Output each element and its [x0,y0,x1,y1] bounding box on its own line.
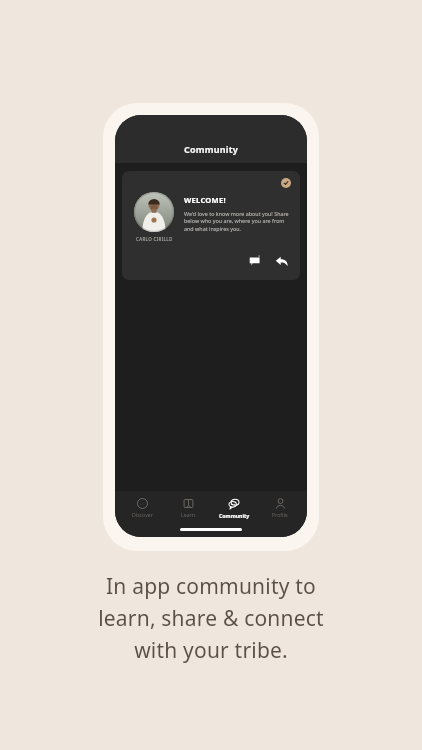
button[interactable]: Learn [165,491,211,525]
button[interactable]: Verified [122,171,300,280]
staticText: with your tribe. [30,636,392,665]
staticText: learn, share & connect [30,604,392,633]
button[interactable]: Community [211,491,257,525]
button[interactable]: Profile [257,491,303,525]
staticText: Community [219,512,250,519]
button[interactable]: Discover [119,491,165,525]
staticText: CARLO CIRILLO [136,236,173,242]
button[interactable]: Comment [245,251,265,271]
button[interactable]: Reply [271,251,291,271]
staticText: In app community to [30,572,392,601]
staticText: WELCOME! [184,195,226,205]
staticText: Discover [132,511,153,518]
staticText: We'd love to know more about you! Share … [184,210,291,233]
button[interactable]: Verified [281,178,291,188]
staticText: Profile [272,511,288,518]
staticText: Community [184,143,239,155]
staticText: Learn [181,511,195,518]
